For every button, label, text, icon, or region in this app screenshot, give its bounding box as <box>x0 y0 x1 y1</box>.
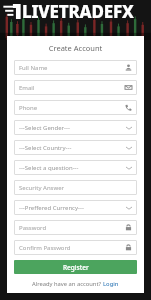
staticText: Security Answer <box>19 184 65 192</box>
button[interactable]: Register <box>14 260 137 274</box>
staticText: Email <box>19 84 35 92</box>
button[interactable]: Confirm Password <box>14 240 137 255</box>
button[interactable]: Password <box>14 220 137 235</box>
staticText: ---Select a question--- <box>19 164 79 172</box>
staticText: Confirm Password <box>19 244 71 252</box>
staticText: LIVETRADEFX <box>22 0 134 22</box>
button[interactable]: ---Select Country--- <box>14 140 137 155</box>
staticText: Password <box>19 224 47 232</box>
staticText: Register <box>63 263 89 272</box>
button[interactable]: Security Answer <box>14 180 137 195</box>
staticText: Create Account <box>7 43 144 53</box>
button[interactable]: ---Select a question--- <box>14 160 137 175</box>
button[interactable]: Full Name <box>14 60 137 75</box>
staticText: ---Select Country--- <box>19 144 72 152</box>
button[interactable]: Login <box>103 280 119 288</box>
button[interactable]: ---Preffered Currency--- <box>14 200 137 215</box>
staticText: Phone <box>19 104 38 112</box>
staticText: ---Select Gender--- <box>19 124 70 132</box>
button[interactable]: Phone <box>14 100 137 115</box>
staticText: Already have an account? <box>32 280 103 288</box>
staticText: Login <box>103 280 119 288</box>
button[interactable]: Email <box>14 80 137 95</box>
staticText: Full Name <box>19 64 48 72</box>
staticText: ---Preffered Currency--- <box>19 204 84 212</box>
button[interactable]: ---Select Gender--- <box>14 120 137 135</box>
